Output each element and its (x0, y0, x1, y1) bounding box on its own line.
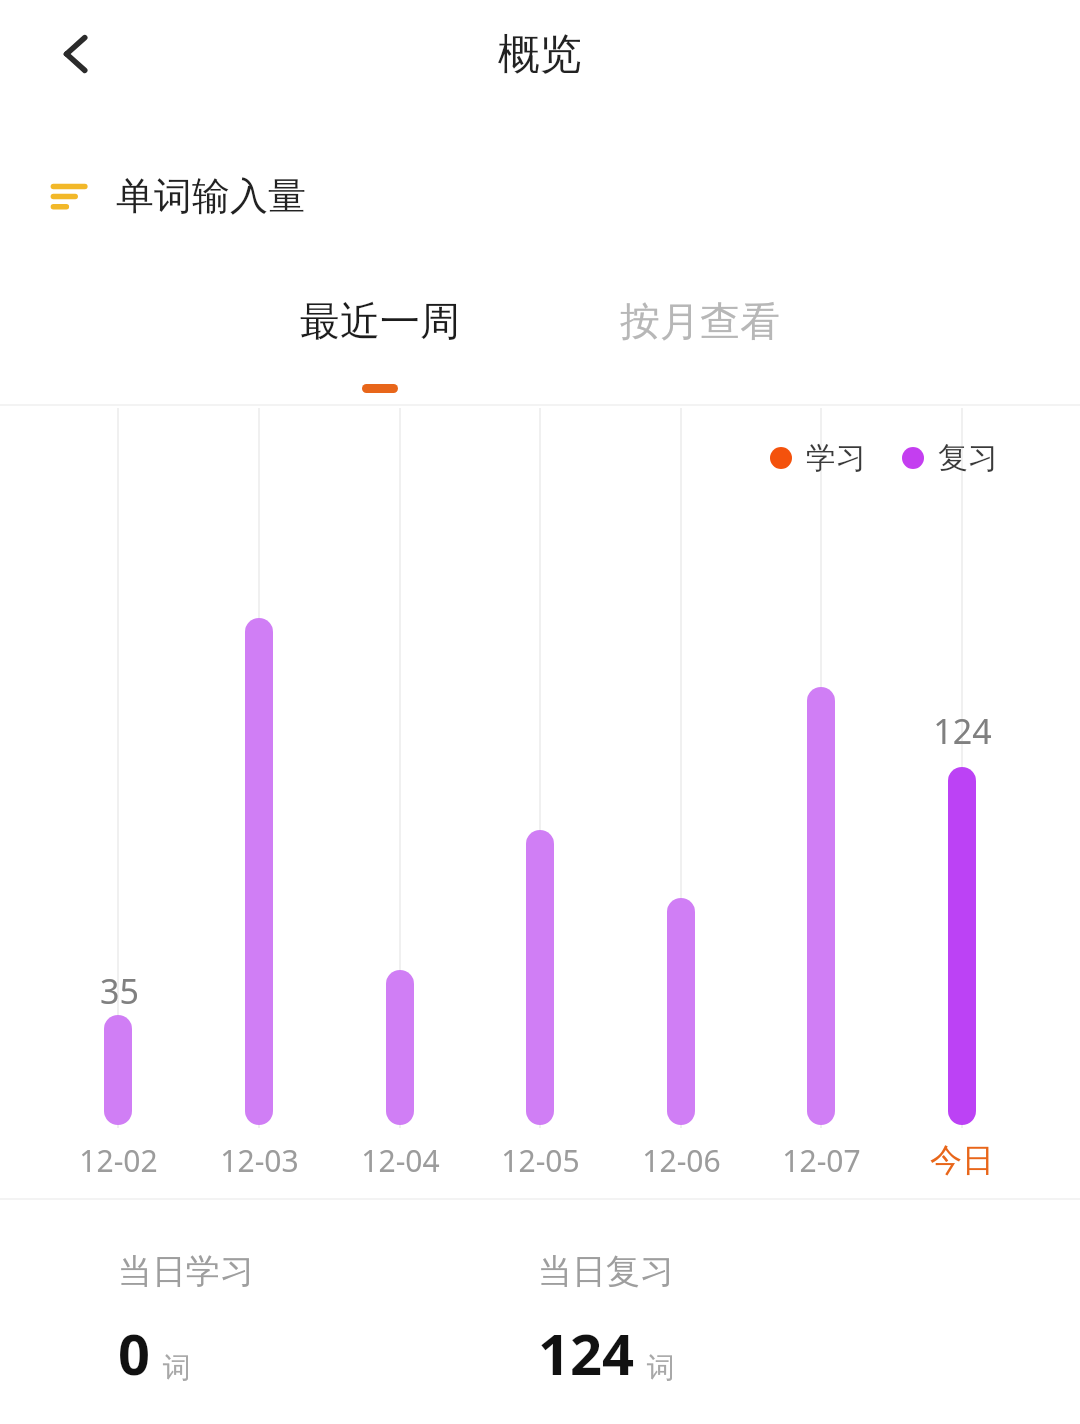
staticText: 12-06 (642, 1140, 721, 1181)
staticText: 12-02 (79, 1140, 158, 1181)
staticText: 12-03 (220, 1140, 299, 1181)
staticText: 复习 (938, 439, 998, 477)
button[interactable]: 按月查看 (560, 296, 840, 392)
staticText: 12-04 (361, 1140, 440, 1181)
staticText: 概览 (498, 28, 582, 81)
staticText: 35 (100, 968, 139, 1014)
button[interactable]: 最近一周 (240, 296, 520, 392)
staticText: 当日复习 (538, 1250, 674, 1293)
staticText: 124 (538, 1315, 635, 1391)
button[interactable]: Back (24, 8, 134, 100)
staticText: 学习 (806, 439, 866, 477)
staticText: 词 (647, 1350, 675, 1385)
staticText: 今日 (930, 1140, 994, 1180)
staticText: 词 (163, 1350, 191, 1385)
staticText: 12-07 (782, 1140, 861, 1181)
staticText: 124 (933, 708, 992, 754)
staticText: 按月查看 (620, 296, 780, 346)
staticText: 最近一周 (300, 296, 460, 346)
staticText: 0 (118, 1315, 151, 1391)
staticText: 单词输入量 (116, 172, 306, 220)
staticText: 12-05 (501, 1140, 580, 1181)
staticText: 当日学习 (118, 1250, 254, 1293)
